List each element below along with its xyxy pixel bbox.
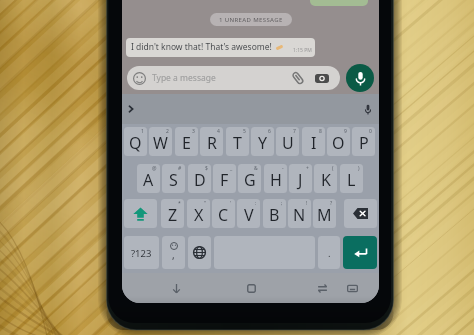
staticText: Type a message: [152, 72, 216, 84]
button[interactable]: Backspace: [344, 199, 377, 228]
staticText: R: [207, 132, 217, 154]
button[interactable]: G: [238, 164, 261, 193]
button[interactable]: E: [175, 127, 198, 156]
staticText: I didn't know that! That's awesome!: [131, 41, 272, 53]
button[interactable]: ?123: [124, 236, 159, 269]
staticText: _: [230, 165, 233, 172]
staticText: 2: [166, 128, 169, 135]
staticText: D: [194, 169, 206, 191]
button[interactable]: F: [213, 164, 236, 193]
staticText: 8: [319, 128, 322, 135]
button[interactable]: X: [187, 199, 210, 228]
staticText: U: [282, 132, 294, 154]
staticText: 1:15 PM: [293, 47, 312, 54]
staticText: S: [169, 169, 178, 191]
button[interactable]: P: [352, 127, 375, 156]
staticText: V: [244, 204, 254, 226]
staticText: ": [204, 200, 207, 207]
staticText: ,: [172, 248, 175, 262]
staticText: L: [347, 169, 356, 191]
button[interactable]: Record voice message: [346, 64, 374, 92]
other: Voice input: [364, 104, 372, 115]
staticText: :: [255, 200, 257, 207]
button[interactable]: A: [137, 164, 160, 193]
staticText: M: [317, 204, 332, 226]
button[interactable]: K: [314, 164, 337, 193]
staticText: $: [205, 165, 208, 172]
staticText: .: [328, 247, 331, 260]
button[interactable]: Q: [124, 127, 147, 156]
staticText: I: [311, 132, 317, 154]
button[interactable]: Change keyboard language: [188, 236, 211, 269]
button[interactable]: Z: [161, 199, 184, 228]
staticText: Z: [168, 204, 178, 226]
staticText: 1 UNREAD MESSAGE: [219, 16, 283, 24]
button[interactable]: L: [340, 164, 363, 193]
button[interactable]: 1 UNREAD MESSAGE: [210, 13, 292, 26]
staticText: P: [359, 132, 369, 154]
button[interactable]: H: [264, 164, 287, 193]
staticText: W: [153, 132, 168, 154]
button[interactable]: J: [289, 164, 312, 193]
staticText: ;: [281, 200, 283, 207]
staticText: E: [182, 132, 191, 154]
staticText: G: [244, 169, 256, 191]
staticText: *: [178, 200, 181, 207]
other: Attach: [291, 71, 305, 85]
button[interactable]: T: [226, 127, 249, 156]
staticText: Q: [129, 132, 142, 154]
button[interactable]: V: [237, 199, 260, 228]
staticText: 1: [141, 128, 144, 135]
button[interactable]: I: [302, 127, 325, 156]
staticText: O: [332, 132, 345, 154]
button[interactable]: R: [200, 127, 223, 156]
button[interactable]: Recent apps: [306, 273, 338, 303]
button[interactable]: B: [263, 199, 286, 228]
button[interactable]: Shift: [124, 199, 157, 228]
button[interactable]: C: [212, 199, 235, 228]
staticText: -: [282, 165, 284, 172]
staticText: 0: [369, 128, 372, 135]
button[interactable]: Emoji: [162, 236, 185, 269]
staticText: #: [178, 165, 182, 172]
button[interactable]: Switch keyboard: [336, 273, 368, 303]
button[interactable]: .: [318, 236, 340, 269]
staticText: 9: [344, 128, 347, 135]
staticText: B: [269, 204, 280, 226]
staticText: A: [143, 169, 154, 191]
staticText: (: [332, 165, 334, 172]
staticText: ?: [330, 200, 333, 207]
staticText: @: [152, 165, 157, 172]
staticText: J: [298, 169, 303, 191]
staticText: 6: [268, 128, 271, 135]
staticText: K: [321, 169, 331, 191]
button[interactable]: Type a message: [127, 66, 340, 90]
other: Camera: [315, 72, 329, 85]
button[interactable]: U: [276, 127, 299, 156]
staticText: F: [220, 169, 229, 191]
button[interactable]: D: [188, 164, 211, 193]
staticText: T: [233, 132, 242, 154]
button[interactable]: W: [149, 127, 172, 156]
staticText: 7: [293, 128, 296, 135]
staticText: Y: [258, 132, 268, 154]
button[interactable]: Y: [251, 127, 274, 156]
button[interactable]: Home: [235, 273, 267, 303]
staticText: &: [254, 165, 258, 172]
staticText: C: [218, 204, 229, 226]
other: More suggestions: [126, 104, 136, 114]
button[interactable]: Hide keyboard: [160, 273, 192, 303]
staticText: X: [194, 204, 204, 226]
staticText: ': [230, 200, 232, 207]
button[interactable]: M: [313, 199, 336, 228]
button[interactable]: Send: [343, 236, 377, 269]
staticText: 4: [217, 128, 220, 135]
staticText: 5: [243, 128, 246, 135]
staticText: ?123: [131, 247, 152, 260]
staticText: 3: [192, 128, 195, 135]
staticText: H: [270, 169, 282, 191]
button[interactable]: O: [327, 127, 350, 156]
button[interactable]: N: [288, 199, 311, 228]
button[interactable]: S: [162, 164, 185, 193]
